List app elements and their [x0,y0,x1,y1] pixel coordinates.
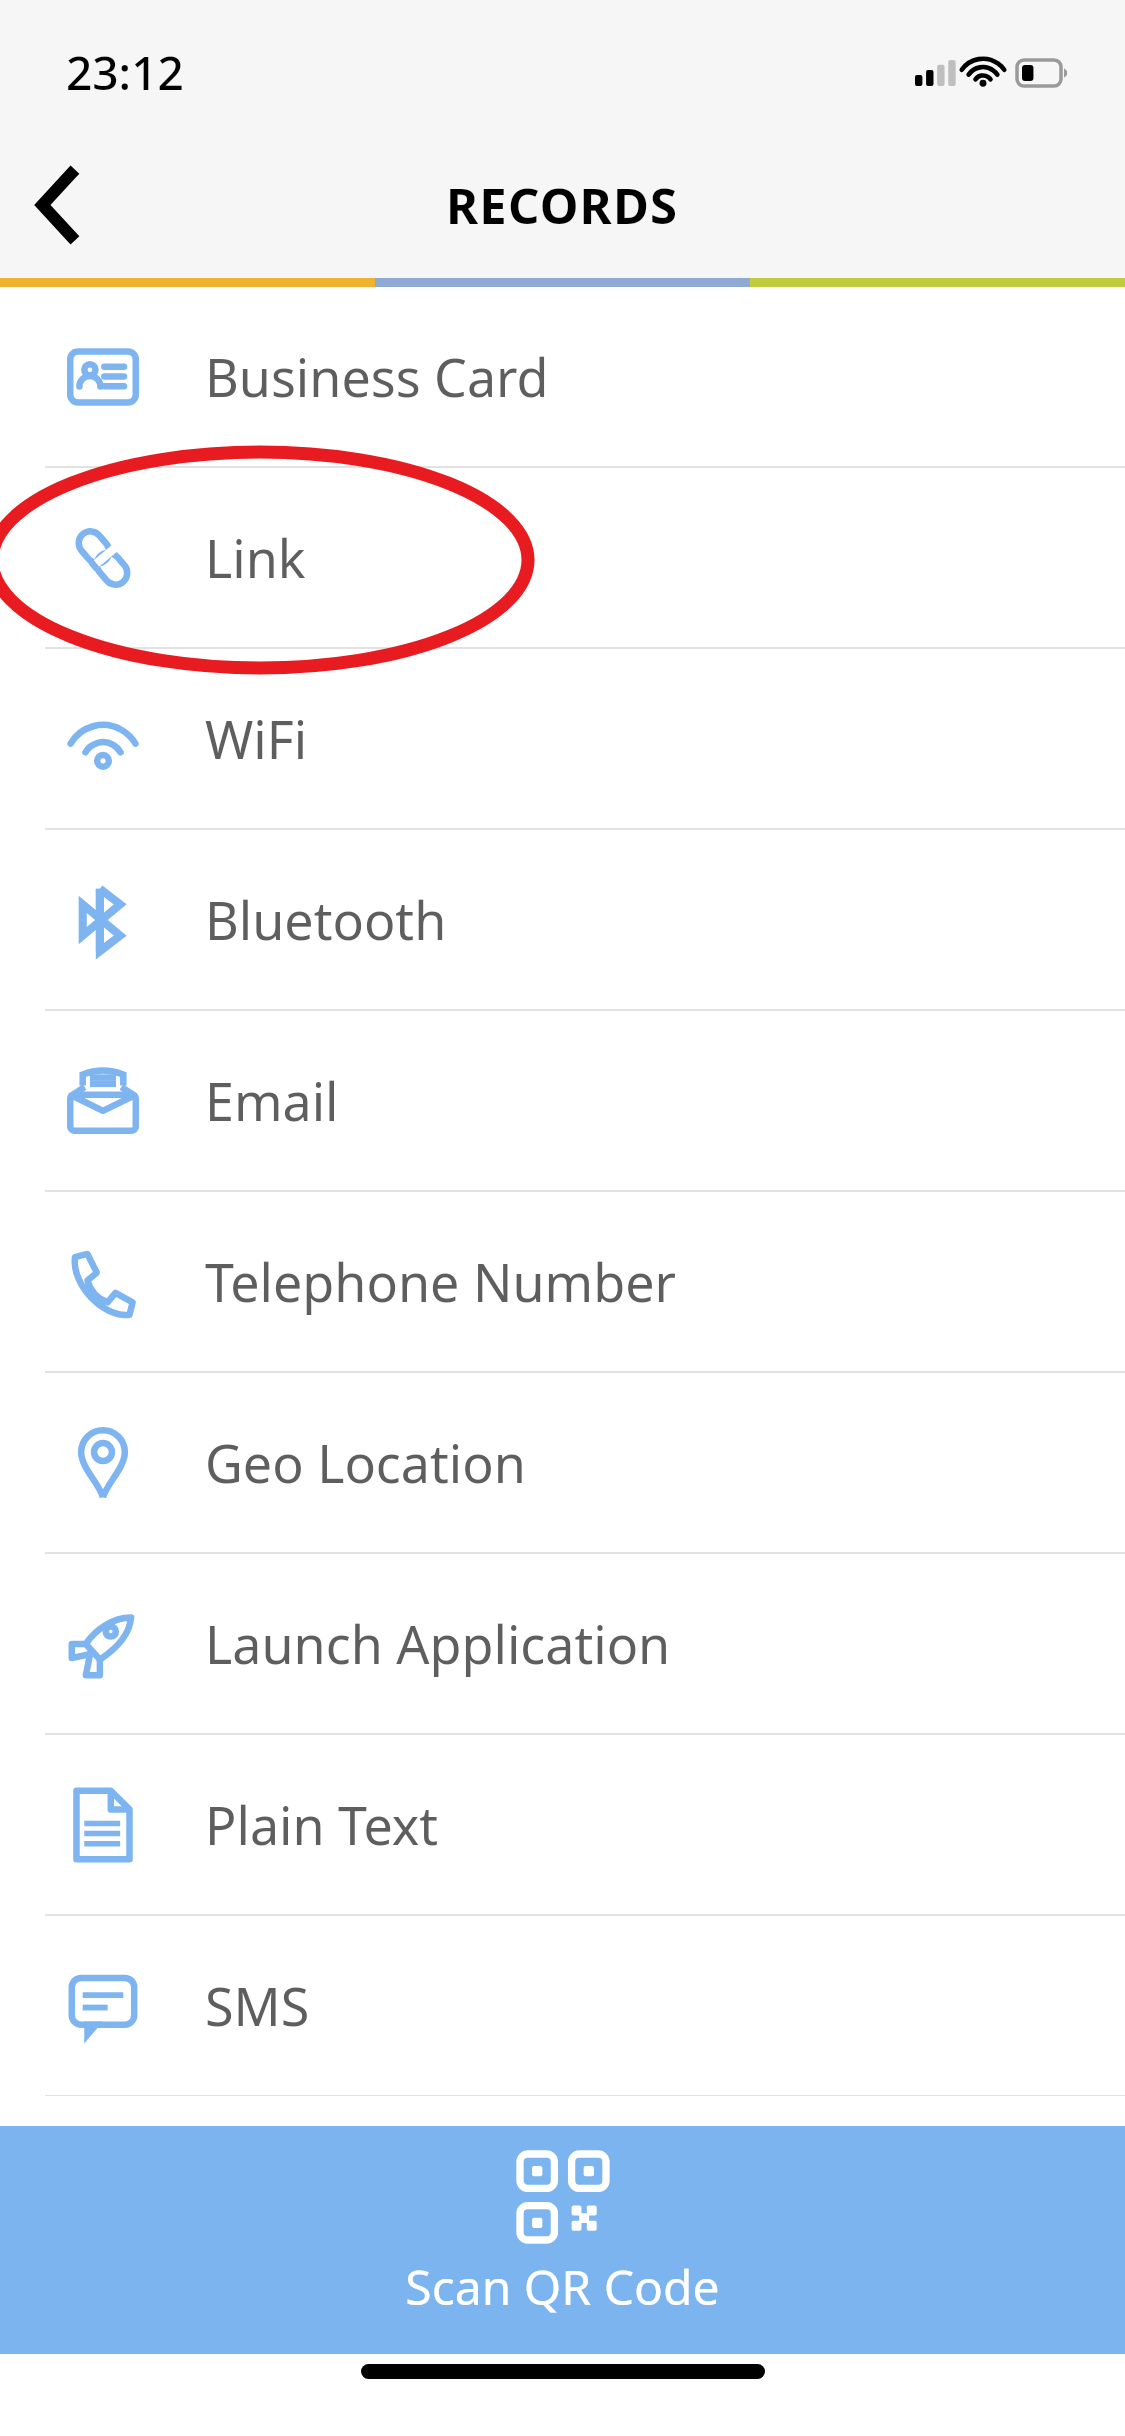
staticText: RECORDS [446,172,679,239]
button[interactable]: Link [0,468,1125,647]
staticText: Scan QR Code [405,2254,720,2319]
staticText: Geo Location [205,1427,526,1498]
button[interactable]: Scan QR Code [0,2126,1125,2354]
button[interactable]: Email [0,1011,1125,1190]
button[interactable]: Telephone Number [0,1192,1125,1371]
staticText: Plain Text [205,1789,438,1860]
button[interactable]: Business Card [0,287,1125,466]
staticText: Link [205,522,306,593]
button[interactable]: Geo Location [0,1373,1125,1552]
staticText: WiFi [205,703,308,774]
button[interactable]: Bluetooth [0,830,1125,1009]
button[interactable]: WiFi [0,649,1125,828]
button[interactable]: Launch Application [0,1554,1125,1733]
staticText: Telephone Number [205,1246,676,1317]
button[interactable]: Plain Text [0,1735,1125,1914]
staticText: Email [205,1065,339,1136]
staticText: Business Card [205,341,549,412]
staticText: 23:12 [66,41,184,104]
staticText: Bluetooth [205,884,447,955]
button[interactable]: SMS [0,1916,1125,2095]
staticText: Launch Application [205,1608,671,1679]
staticText: SMS [205,1970,310,2041]
button[interactable]: Back [0,147,116,263]
